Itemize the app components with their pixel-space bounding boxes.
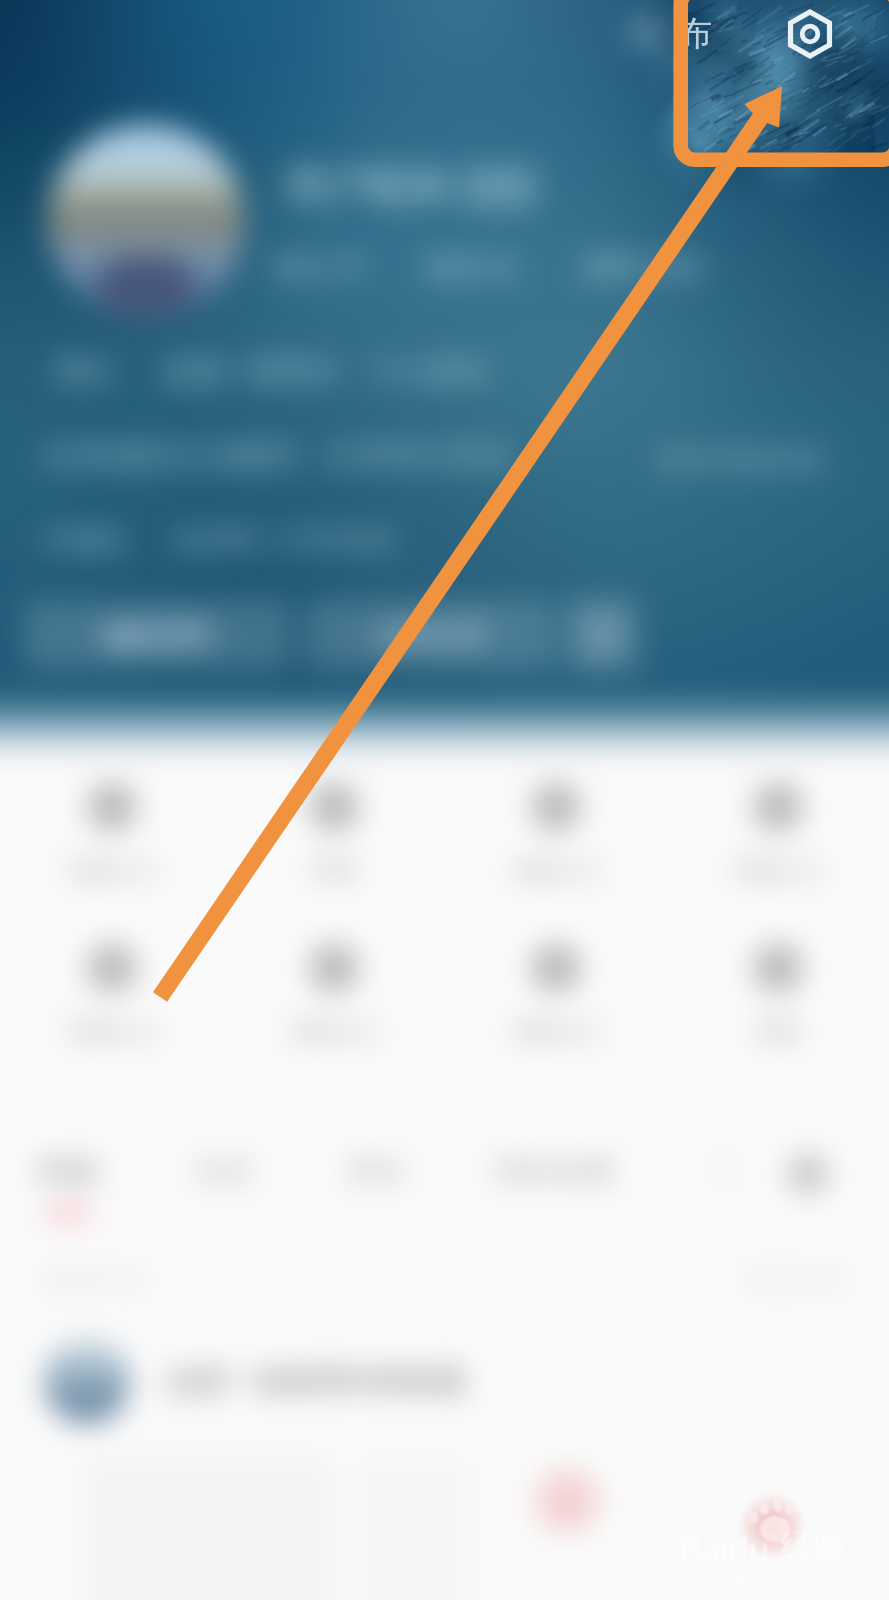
staticText: 经验 xyxy=(780,1526,846,1568)
staticText: 发布 xyxy=(629,13,689,51)
staticText: 分享主页 xyxy=(374,618,486,653)
button[interactable]: 功能入口 xyxy=(223,943,445,1046)
button[interactable]: 功能入口 xyxy=(445,943,667,1046)
staticText: Baidu xyxy=(680,1526,770,1571)
button[interactable]: 编辑资料 xyxy=(25,600,290,670)
button[interactable] xyxy=(48,124,244,320)
button[interactable]: 作品 xyxy=(38,1152,98,1217)
staticText: 更多信息内容 xyxy=(656,442,824,477)
staticText: 关注 18 xyxy=(272,248,361,284)
button[interactable]: More options xyxy=(568,600,636,670)
button[interactable]: Filter xyxy=(788,1154,828,1194)
staticText: 记录精彩生活瞬间 xyxy=(42,436,298,476)
button[interactable]: 喜欢 xyxy=(346,1152,406,1217)
staticText: 粉丝 95 xyxy=(427,248,516,284)
staticText: 这是第二行的信息 xyxy=(171,522,395,557)
staticText: 获赞 3200 xyxy=(584,248,703,284)
button[interactable]: 功能入口 xyxy=(0,943,223,1046)
button[interactable]: 我的收藏 xyxy=(494,1152,614,1217)
staticText: + xyxy=(592,612,612,658)
staticText: 用户昵称 xyxy=(284,160,452,213)
staticText: IP属地 xyxy=(42,520,125,558)
button[interactable]: Camera xyxy=(786,10,834,58)
staticText: 这是一条推荐内容标题 xyxy=(166,1362,466,1400)
button[interactable]: 分享主页 xyxy=(305,600,555,670)
button[interactable]: 设置 xyxy=(667,943,889,1046)
button[interactable]: 功能入口 xyxy=(445,782,667,885)
button[interactable]: 草稿 xyxy=(223,782,445,885)
staticText: 作品 xyxy=(38,1152,98,1190)
staticText: 编辑资料 xyxy=(102,618,214,653)
staticText: 简介 xyxy=(56,352,116,390)
staticText: 这是一段简介 xyxy=(162,352,342,390)
staticText: 个人签名 xyxy=(370,352,490,390)
button[interactable]: 动态 xyxy=(194,1152,254,1217)
button[interactable]: 功能入口 xyxy=(667,782,889,885)
button[interactable] xyxy=(462,166,536,208)
staticText: 分享每日美好 xyxy=(322,436,514,476)
staticText: 布 xyxy=(678,12,712,55)
button[interactable]: 功能入口 xyxy=(0,782,223,885)
